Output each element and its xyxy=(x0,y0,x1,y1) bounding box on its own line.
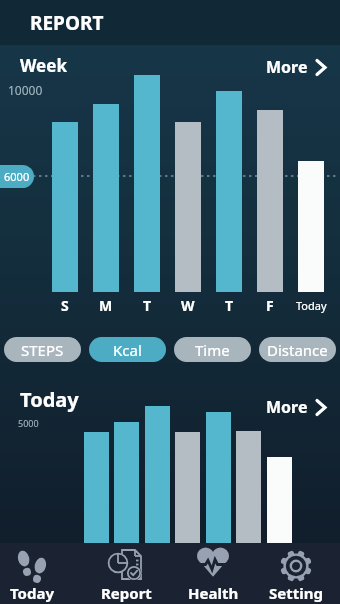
staticText: T xyxy=(225,296,234,315)
staticText: STEPS xyxy=(21,340,64,360)
staticText: Today xyxy=(20,386,79,413)
button[interactable]: More xyxy=(266,56,328,78)
button[interactable]: Setting xyxy=(256,548,336,604)
button[interactable]: Today xyxy=(0,548,72,604)
button[interactable]: Report xyxy=(86,548,166,604)
staticText: Distance xyxy=(267,340,328,360)
button[interactable]: More xyxy=(266,396,328,418)
staticText: Today xyxy=(296,298,327,313)
staticText: More xyxy=(266,396,308,418)
staticText: W xyxy=(181,296,195,315)
button[interactable]: STEPS xyxy=(4,337,81,362)
button[interactable]: Time xyxy=(174,337,251,362)
staticText: F xyxy=(266,296,274,315)
staticText: M xyxy=(99,296,113,315)
staticText: More xyxy=(266,56,308,78)
staticText: T xyxy=(143,296,152,315)
staticText: S xyxy=(61,296,69,315)
staticText: Health xyxy=(188,583,239,603)
staticText: Today xyxy=(10,583,55,603)
staticText: 6000 xyxy=(4,169,30,184)
button[interactable]: Distance xyxy=(259,337,336,362)
staticText: REPORT xyxy=(30,10,104,36)
staticText: Report xyxy=(101,583,152,603)
staticText: Time xyxy=(195,340,230,360)
button[interactable]: Health xyxy=(173,548,253,604)
staticText: Setting xyxy=(269,583,323,603)
staticText: 5000 xyxy=(18,417,39,429)
button[interactable]: Kcal xyxy=(89,337,166,362)
staticText: Week xyxy=(20,54,67,77)
staticText: 10000 xyxy=(8,82,43,98)
staticText: Kcal xyxy=(113,340,142,360)
